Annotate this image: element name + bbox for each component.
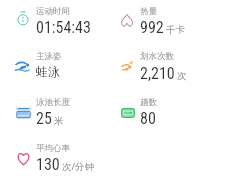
button[interactable] <box>14 48 110 80</box>
staticText: 运动时间 <box>36 6 70 17</box>
button[interactable] <box>14 94 110 126</box>
staticText: 千卡 <box>166 24 185 36</box>
other: Pool length <box>16 107 31 118</box>
staticText: 2,210 <box>140 64 175 83</box>
other: Average heart rate <box>16 152 31 165</box>
other: Duration <box>17 9 29 24</box>
staticText: 主泳姿 <box>36 51 62 62</box>
staticText: 米 <box>54 115 64 127</box>
staticText: 25 <box>36 109 52 128</box>
button[interactable] <box>14 3 110 35</box>
staticText: 趟数 <box>140 97 157 108</box>
button[interactable] <box>118 94 214 126</box>
other: Laps <box>121 108 135 118</box>
staticText: 蛙泳 <box>36 64 60 79</box>
staticText: 80 <box>140 109 156 128</box>
staticText: 次 <box>177 70 187 82</box>
button[interactable] <box>118 48 214 80</box>
staticText: 01:54:43 <box>36 18 91 37</box>
staticText: 平均心率 <box>36 143 70 154</box>
staticText: 次/分钟 <box>62 160 95 173</box>
other: Strokes <box>119 59 134 72</box>
other: Stroke style <box>15 60 30 72</box>
button[interactable] <box>14 140 110 172</box>
staticText: 划水次数 <box>140 51 174 62</box>
button[interactable] <box>118 3 214 35</box>
staticText: 泳池长度 <box>36 97 70 108</box>
other: Calories <box>121 14 133 27</box>
staticText: 130 <box>36 155 60 174</box>
staticText: 992 <box>140 18 164 37</box>
staticText: 热量 <box>140 6 157 17</box>
